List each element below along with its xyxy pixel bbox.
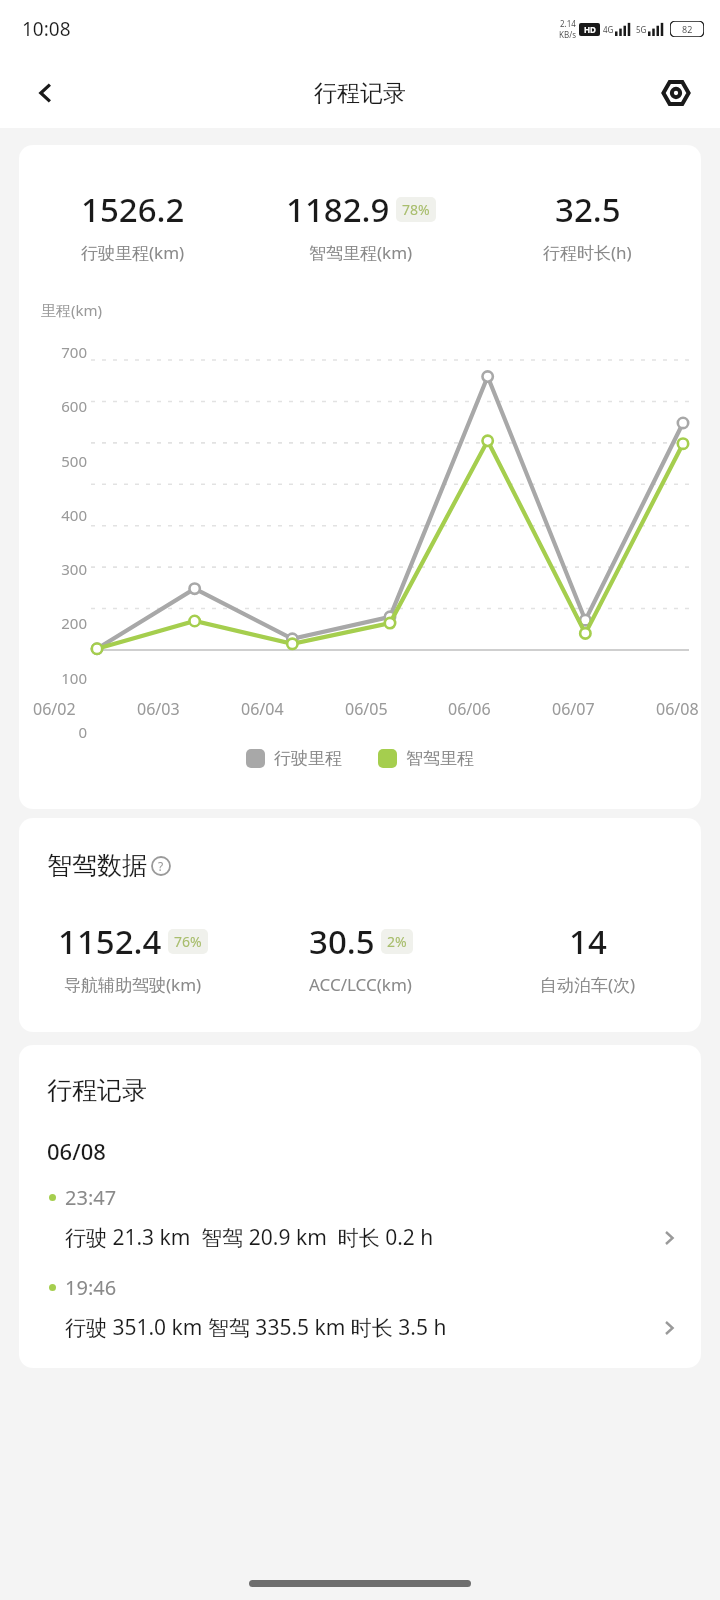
button[interactable]: Settings (654, 71, 698, 115)
staticText: 智驾里程 (406, 748, 474, 769)
staticText: 100 (61, 668, 87, 688)
staticText: 1182.9 (286, 187, 390, 232)
staticText: 行驶 351.0 km 智驾 335.5 km 时长 3.5 h (65, 1313, 447, 1342)
staticText: 里程(km) (41, 300, 103, 320)
staticText: 2% (387, 932, 407, 951)
staticText: 智驾里程(km) (309, 241, 413, 264)
staticText: 行驶里程(km) (81, 241, 185, 264)
staticText: 4G (603, 24, 614, 35)
staticText: 78% (402, 200, 430, 219)
button[interactable]: 23:47 (19, 1184, 701, 1252)
button[interactable]: 19:46 (19, 1274, 701, 1342)
staticText: 200 (61, 613, 87, 633)
button[interactable]: Back (24, 71, 68, 115)
staticText: 2.14 (560, 18, 576, 29)
staticText: 行程记录 (47, 1075, 147, 1106)
staticText: 82 (682, 23, 693, 35)
staticText: 06/07 (552, 698, 595, 720)
staticText: 500 (61, 451, 87, 471)
staticText: 行驶里程 (274, 748, 342, 769)
staticText: 5G (636, 24, 647, 35)
staticText: 自动泊车(次) (540, 973, 636, 996)
staticText: 06/08 (656, 698, 699, 720)
staticText: 06/02 (33, 698, 76, 720)
staticText: 76% (174, 932, 202, 951)
staticText: 10:08 (22, 16, 71, 42)
staticText: KB/s (559, 29, 576, 40)
staticText: 行程记录 (314, 79, 406, 108)
staticText: 1152.4 (58, 919, 162, 964)
staticText: 0 (78, 722, 87, 742)
staticText: 600 (61, 396, 87, 416)
staticText: 32.5 (555, 187, 621, 232)
staticText: 300 (61, 559, 87, 579)
button[interactable]: Info (151, 856, 171, 876)
staticText: 行程时长(h) (543, 241, 632, 264)
staticText: 06/04 (241, 698, 284, 720)
staticText: 行驶 21.3 km 智驾 20.9 km 时长 0.2 h (65, 1223, 434, 1252)
staticText: 14 (569, 919, 607, 964)
staticText: HD (584, 24, 596, 35)
staticText: 700 (61, 342, 87, 362)
staticText: 30.5 (309, 919, 375, 964)
staticText: 1526.2 (81, 187, 185, 232)
staticText: ACC/LCC(km) (309, 973, 412, 996)
staticText: 23:47 (65, 1184, 117, 1211)
staticText: 智驾数据 (47, 850, 147, 881)
staticText: 400 (61, 505, 87, 525)
staticText: 19:46 (65, 1274, 117, 1301)
staticText: 06/08 (47, 1136, 106, 1166)
staticText: 06/06 (448, 698, 491, 720)
staticText: 导航辅助驾驶(km) (64, 973, 202, 996)
staticText: ? (158, 858, 164, 874)
staticText: 06/03 (137, 698, 180, 720)
staticText: 06/05 (345, 698, 388, 720)
